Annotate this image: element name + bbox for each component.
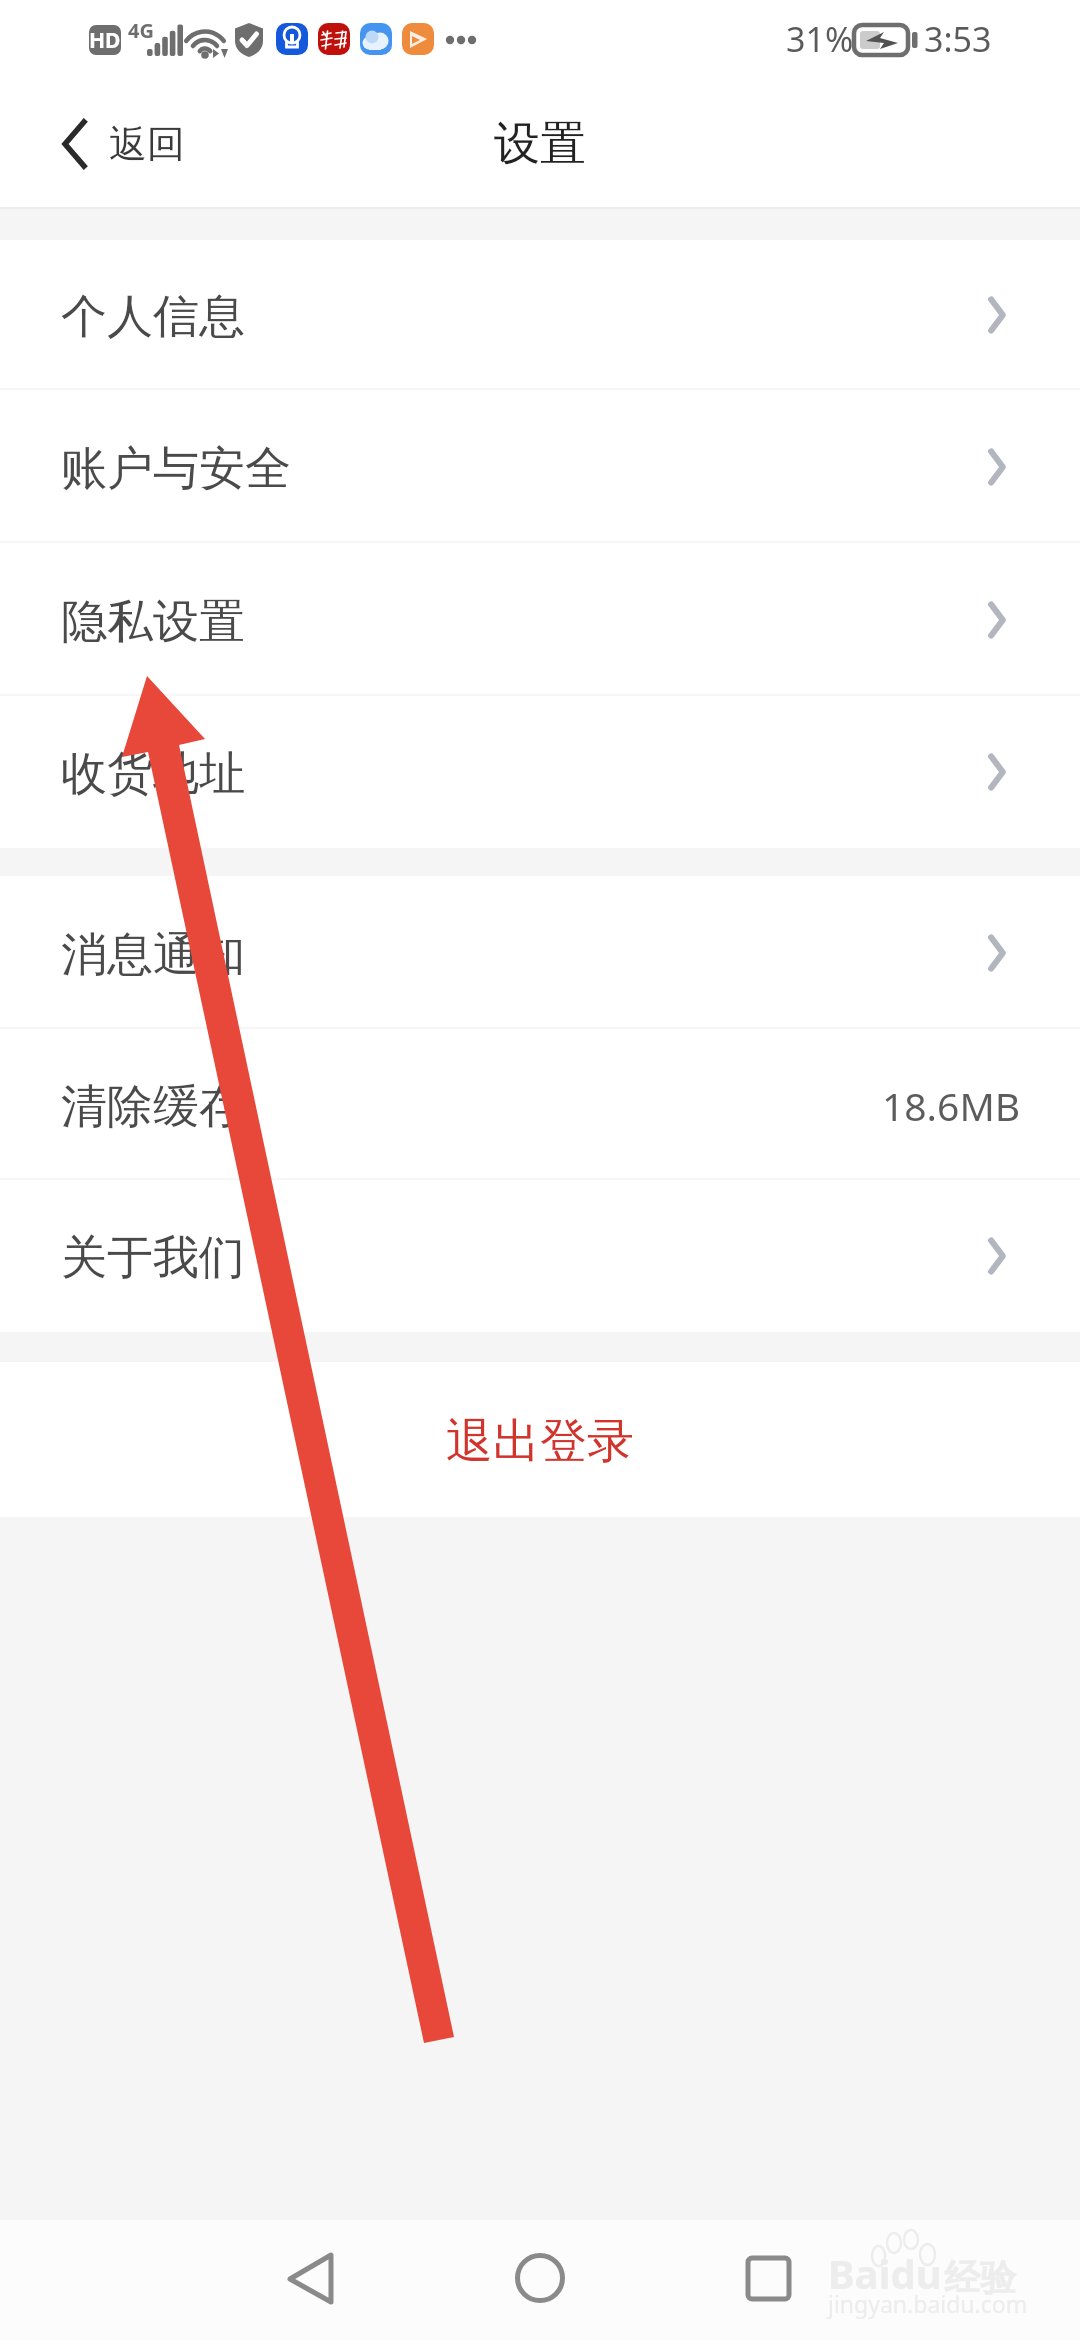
button[interactable]: 隐私设置	[0, 543, 1080, 696]
staticText: 收货地址	[61, 745, 245, 803]
button[interactable]: 退出登录	[0, 1362, 1080, 1517]
button[interactable]: Recents	[710, 2220, 830, 2340]
button[interactable]: 消息通知	[0, 876, 1080, 1029]
staticText: 消息通知	[61, 926, 245, 984]
staticText: 设置	[494, 115, 586, 173]
staticText: 31%	[786, 16, 854, 62]
staticText: HD	[89, 26, 121, 55]
staticText: 4G	[128, 17, 154, 44]
staticText: 隐私设置	[61, 593, 245, 651]
button[interactable]: Home	[480, 2220, 600, 2340]
button[interactable]: 关于我们	[0, 1180, 1080, 1332]
button[interactable]: 清除缓存	[0, 1029, 1080, 1180]
staticText: 清除缓存	[61, 1078, 245, 1136]
button[interactable]: 返回	[0, 101, 209, 187]
button[interactable]: Back	[250, 2220, 370, 2340]
staticText: 经验	[944, 2255, 1016, 2300]
button[interactable]: 收货地址	[0, 696, 1080, 848]
staticText: Baidu	[828, 2246, 942, 2300]
staticText: 18.6MB	[882, 1079, 1021, 1132]
button[interactable]: 账户与安全	[0, 390, 1080, 543]
staticText: 关于我们	[61, 1229, 245, 1287]
staticText: 退出登录	[446, 1412, 634, 1471]
staticText: 个人信息	[61, 288, 245, 346]
staticText: jingyan.baidu.com	[828, 2288, 1028, 2319]
staticText: 3:53	[924, 16, 992, 62]
button[interactable]: 个人信息	[0, 240, 1080, 390]
staticText: 返回	[109, 120, 185, 168]
staticText: 账户与安全	[61, 440, 291, 498]
